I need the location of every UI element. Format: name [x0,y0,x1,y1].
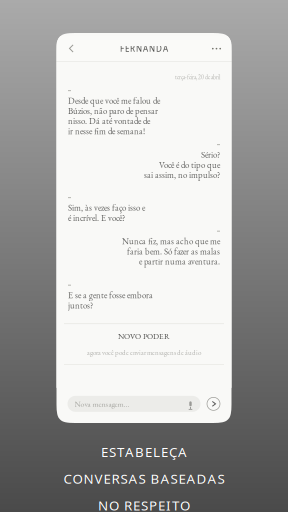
staticText: ir nesse fim de semana! [68,125,145,137]
staticText: Búzios, não paro de pensar [68,105,158,116]
staticText: e partir numa aventura. [139,256,220,267]
staticText: E se a gente fosse embora [68,289,153,301]
staticText: Sim, às vezes faço isso e [68,202,145,213]
staticText: faria bem. Só fazer as malas [127,245,220,257]
staticText: sai assim, no impulso? [144,169,220,181]
button[interactable]: Nova mensagem... [67,396,200,412]
staticText: Você é do tipo que [159,159,220,170]
staticText: N O R E S P E I T O [98,496,190,512]
staticText: Nova mensagem... [74,399,129,409]
staticText: terça-feira, 20 de abril [175,73,220,81]
staticText: E S T A B E L E Ç A [101,443,187,461]
staticText: Desde que você me falou de [68,95,160,106]
staticText: F E R N A N D A [120,43,168,54]
staticText: C O N V E R S A S B A S E A D A S [63,470,224,487]
staticText: Nunca fiz, mas acho que me [122,235,220,247]
staticText: é incrível. E você? [68,212,125,223]
button[interactable]: More options [206,36,226,61]
staticText: N O V O P O D E R [118,331,170,341]
button[interactable]: Send [206,397,220,411]
staticText: Sério? [201,149,220,160]
button[interactable]: Back [61,36,81,61]
staticText: nisso. Dá até vontade de [68,115,150,127]
staticText: agora você pode enviar mensagens de áudi… [87,348,201,357]
staticText: juntos? [68,299,93,311]
